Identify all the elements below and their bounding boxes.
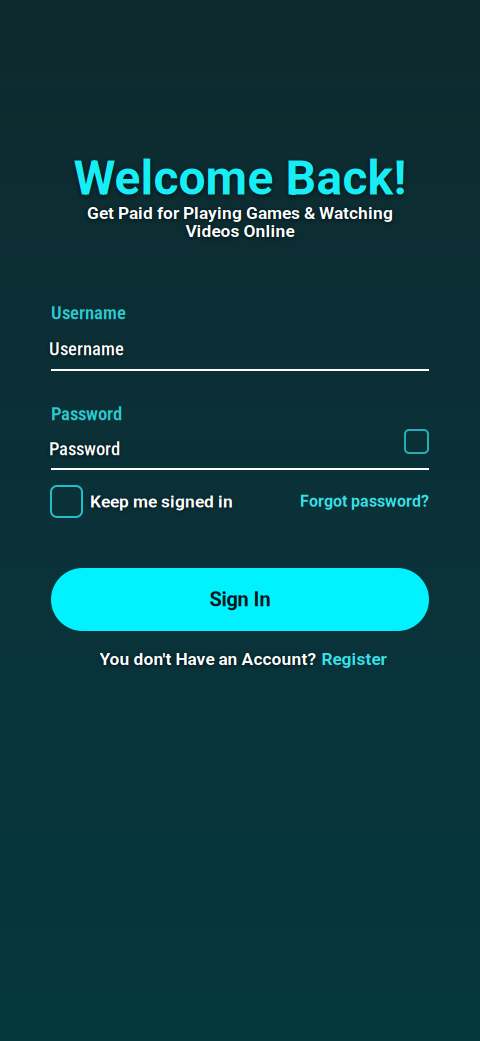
- staticText: Password: [51, 403, 122, 425]
- button[interactable]: Keep me signed in: [51, 486, 233, 517]
- staticText: Register: [321, 649, 386, 669]
- button[interactable]: Register: [321, 649, 386, 669]
- staticText: Username: [51, 302, 126, 324]
- staticText: Get Paid for Playing Games & Watching: [87, 203, 393, 223]
- staticText: Forgot password?: [300, 492, 429, 511]
- staticText: Welcome Back!: [73, 150, 406, 206]
- staticText: Password: [49, 438, 120, 460]
- staticText: Username: [49, 338, 124, 360]
- button[interactable]: Sign In: [51, 568, 429, 631]
- button[interactable]: Show password: [405, 430, 428, 453]
- staticText: You don't Have an Account?: [99, 649, 316, 669]
- staticText: Keep me signed in: [90, 491, 233, 512]
- staticText: Videos Online: [185, 221, 294, 241]
- button[interactable]: Forgot password?: [297, 492, 429, 511]
- staticText: Sign In: [209, 588, 270, 611]
